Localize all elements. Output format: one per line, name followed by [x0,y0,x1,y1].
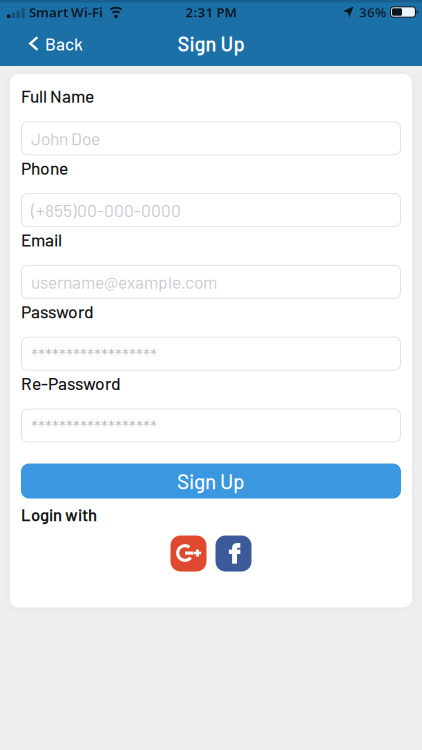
staticText: Sign Up [177,31,244,55]
button[interactable]: Login with Google [170,535,206,571]
button[interactable]: Re-Password [21,408,401,442]
staticText: Phone [21,157,68,178]
staticText: Sign Up [177,469,245,493]
button[interactable]: Login with Facebook [215,535,251,571]
button[interactable]: Email [21,265,401,299]
button[interactable]: Phone [21,193,401,227]
staticText: Password [21,301,94,322]
button[interactable]: Sign Up [21,463,401,498]
button[interactable]: Password [21,337,401,371]
staticText: username@example.com [31,271,217,292]
staticText: Email [21,229,62,250]
staticText: Smart Wi-Fi [29,3,103,21]
staticText: John Doe [31,128,100,149]
staticText: ****************** [31,416,157,437]
staticText: Login with [21,504,97,524]
button[interactable]: Back [0,33,83,57]
staticText: Re-Password [21,373,121,393]
button[interactable]: Full Name [21,121,401,155]
staticText: Full Name [21,85,94,106]
staticText: (+855)00-000-0000 [31,200,181,220]
staticText: Back [45,33,83,54]
staticText: ****************** [31,344,157,365]
staticText: 2:31 PM [185,3,236,21]
staticText: 36% [359,3,386,21]
